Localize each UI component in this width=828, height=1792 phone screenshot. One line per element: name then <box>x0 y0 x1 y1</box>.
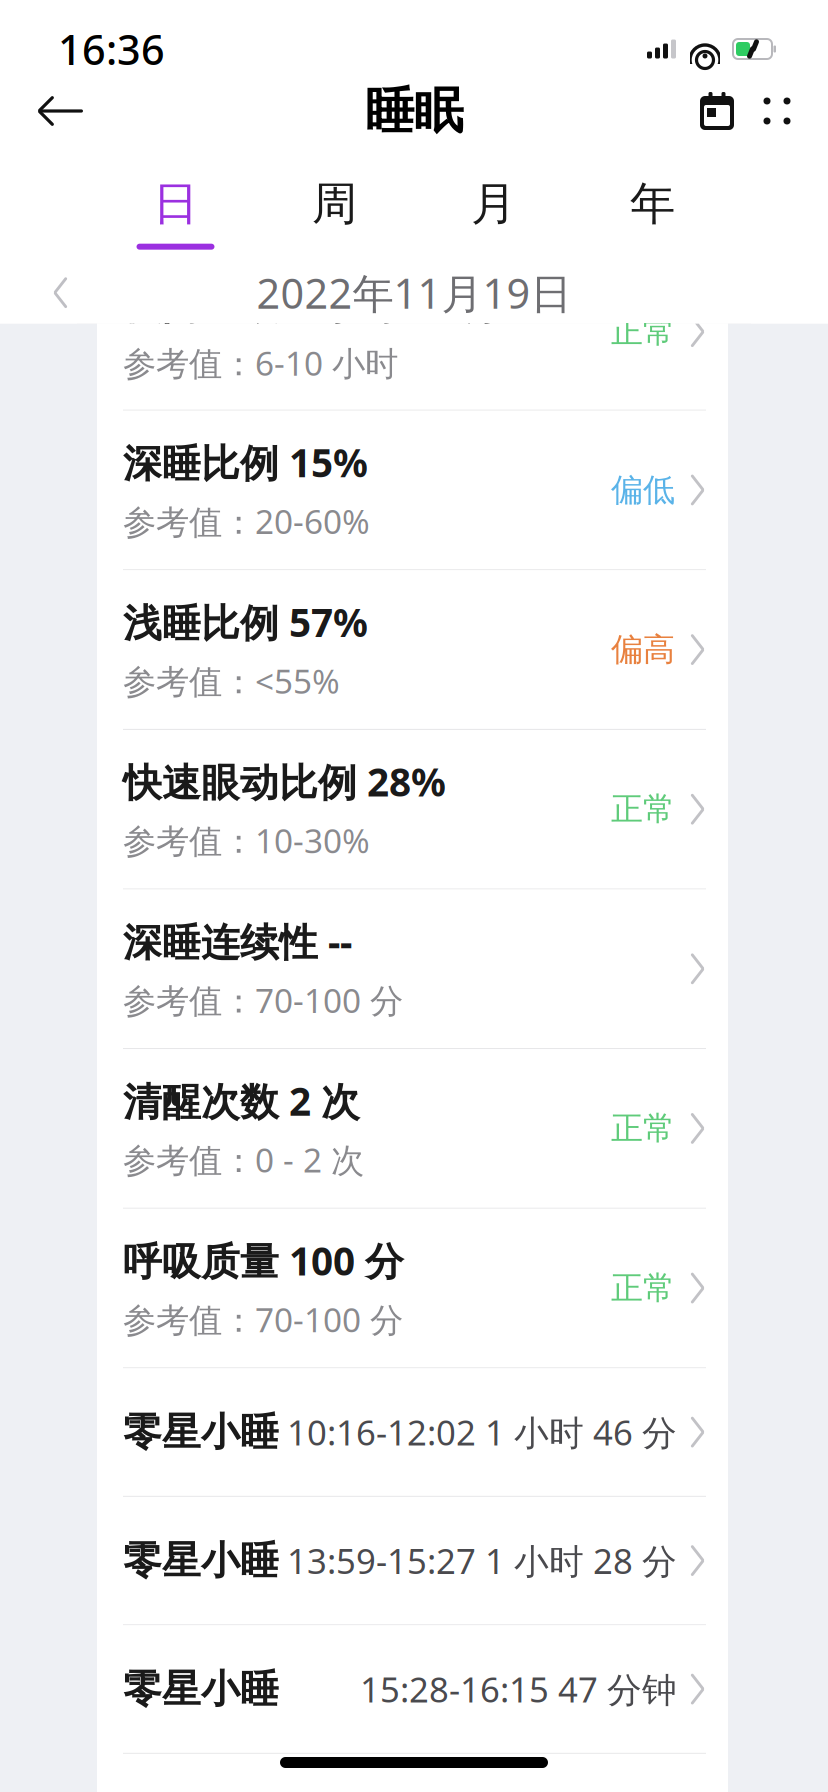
button[interactable]: 日 <box>96 172 255 254</box>
staticText: 深睡比例 15% <box>123 437 368 488</box>
button[interactable]: 前一天 <box>0 266 69 320</box>
staticText: 参考值：10-30% <box>123 818 370 863</box>
staticText: 零星小睡 <box>123 1665 279 1713</box>
staticText: 正常 <box>611 790 675 829</box>
button[interactable]: 浅睡比例 57% <box>97 570 728 730</box>
staticText: 参考值：70-100 分 <box>123 978 403 1022</box>
button[interactable]: 零星小睡 <box>97 1368 728 1497</box>
button[interactable]: 周 <box>255 172 414 254</box>
button[interactable]: 零星小睡 <box>97 1625 728 1754</box>
staticText: 日 <box>153 176 198 232</box>
staticText: 深睡连续性 -- <box>123 915 352 967</box>
button[interactable]: 快速眼动比例 28% <box>97 730 728 889</box>
staticText: 正常 <box>611 1268 675 1308</box>
staticText: 正常 <box>611 312 675 351</box>
staticText: 快速眼动比例 28% <box>123 756 446 807</box>
staticText: 偏高 <box>611 630 675 669</box>
staticText: 周 <box>312 176 357 232</box>
button[interactable]: 夜间睡眠 8 小时 00 分 <box>97 324 728 411</box>
button[interactable]: 清醒次数 2 次 <box>97 1049 728 1209</box>
staticText: 16:36 <box>58 22 165 76</box>
staticText: 偏低 <box>611 470 675 510</box>
staticText: 零星小睡 <box>123 1408 279 1456</box>
staticText: 夜间睡眠 8 小时 00 分 <box>123 278 502 330</box>
staticText: 月 <box>471 176 516 232</box>
staticText: 清醒次数 2 次 <box>123 1075 360 1126</box>
staticText: 睡眠 <box>365 81 463 141</box>
button[interactable]: 更多 <box>746 85 828 137</box>
button[interactable]: 总睡眠 <box>97 1754 728 1792</box>
button[interactable]: 呼吸质量 100 分 <box>97 1209 728 1368</box>
staticText: 零星小睡 <box>123 1537 279 1584</box>
staticText: 呼吸质量 100 分 <box>123 1235 404 1286</box>
staticText: 参考值：70-100 分 <box>123 1297 403 1341</box>
staticText: 参考值：0 - 2 次 <box>123 1137 364 1182</box>
staticText: 浅睡比例 57% <box>123 596 368 648</box>
staticText: 年 <box>630 176 675 232</box>
staticText: 参考值：<55% <box>123 659 340 703</box>
staticText: 10:16-12:02 1 小时 46 分 <box>287 1409 677 1455</box>
button[interactable]: 返回 <box>0 84 84 138</box>
button[interactable]: 年 <box>573 172 732 254</box>
staticText: 15:28-16:15 47 分钟 <box>360 1666 677 1712</box>
button[interactable]: 日历 <box>688 85 746 137</box>
button[interactable]: 零星小睡 <box>97 1497 728 1625</box>
staticText: 2022年11月19日 <box>256 265 571 320</box>
button[interactable]: 深睡比例 15% <box>97 411 728 570</box>
staticText: 参考值：6-10 小时 <box>123 341 398 385</box>
button[interactable]: 深睡连续性 -- <box>97 889 728 1049</box>
button[interactable]: 月 <box>414 172 573 254</box>
staticText: 参考值：20-60% <box>123 499 370 543</box>
staticText: 正常 <box>611 1109 675 1148</box>
staticText: 13:59-15:27 1 小时 28 分 <box>287 1538 677 1584</box>
